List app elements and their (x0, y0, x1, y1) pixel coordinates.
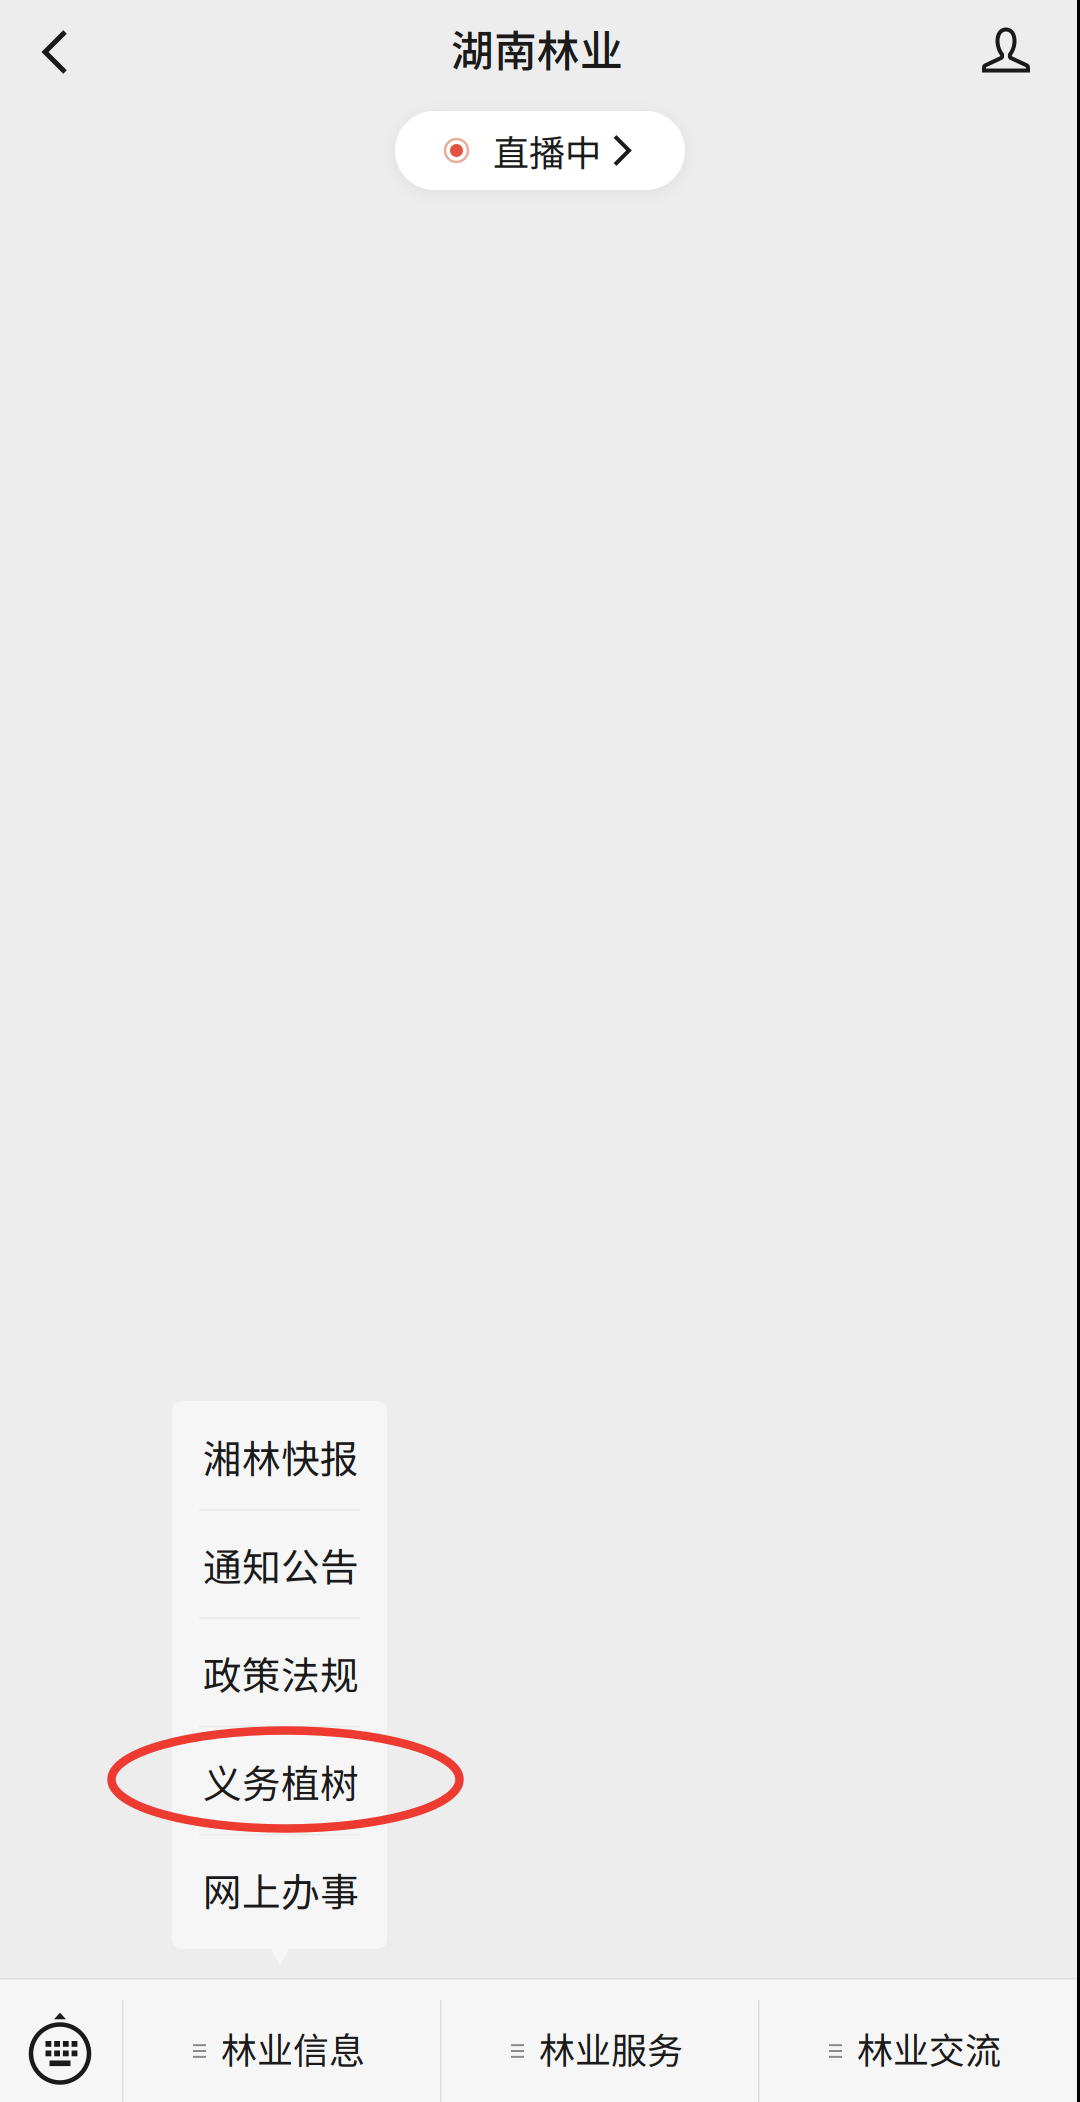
staticText: 网上办事 (203, 1861, 359, 1917)
button[interactable]: 直播中 (395, 111, 685, 190)
staticText: 义务植树 (203, 1753, 359, 1809)
staticText: 林业交流 (857, 2022, 1001, 2074)
button[interactable]: 林业交流 (758, 1978, 1076, 2102)
staticText: 政策法规 (203, 1645, 359, 1701)
staticText: 林业信息 (221, 2022, 365, 2074)
button[interactable]: 义务植树 (172, 1727, 387, 1835)
staticText: 林业服务 (539, 2022, 683, 2074)
staticText: 通知公告 (203, 1537, 359, 1593)
staticText: 湘林快报 (203, 1428, 359, 1484)
staticText: 直播中 (493, 124, 601, 176)
button[interactable]: 通知公告 (172, 1511, 387, 1619)
button[interactable]: 林业信息 (122, 1978, 440, 2102)
button[interactable]: 键盘 (0, 1978, 122, 2102)
button[interactable]: 网上办事 (172, 1835, 387, 1944)
staticText: 湖南林业 (451, 17, 623, 79)
button[interactable]: 湘林快报 (172, 1402, 387, 1511)
button[interactable]: 林业服务 (440, 1978, 758, 2102)
button[interactable]: 返回 (0, 0, 106, 96)
button[interactable]: 政策法规 (172, 1619, 387, 1727)
button[interactable]: 联系人 (932, 0, 1080, 96)
